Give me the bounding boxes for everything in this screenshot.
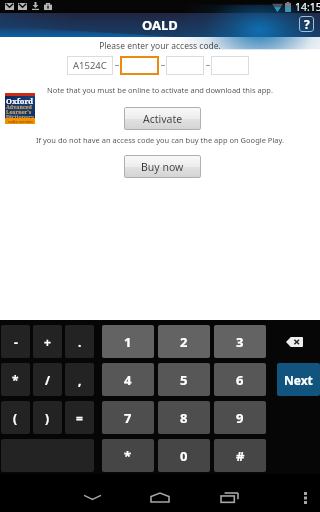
staticText: 6 <box>236 371 244 389</box>
staticText: Note that you must be online to activate… <box>0 85 320 95</box>
staticText: Oxford <box>6 96 34 106</box>
staticText: 8 <box>180 409 188 427</box>
staticText: ( <box>13 410 18 426</box>
button[interactable]: More options <box>295 483 315 512</box>
staticText: , <box>78 372 82 388</box>
button[interactable]: Activate <box>124 107 201 130</box>
button[interactable]: - <box>1 325 30 358</box>
button[interactable] <box>120 56 159 75</box>
button[interactable] <box>211 56 249 75</box>
button[interactable]: * <box>1 363 30 396</box>
staticText: radio version <box>8 119 33 124</box>
staticText: / <box>45 372 50 388</box>
staticText: Please enter your access code. <box>0 40 320 52</box>
staticText: 0 <box>180 447 188 465</box>
button[interactable]: Recent apps <box>209 483 249 512</box>
button[interactable]: * <box>102 439 154 472</box>
staticText: 3 <box>236 333 244 351</box>
button[interactable]: , <box>65 363 94 396</box>
button[interactable]: 5 <box>158 363 210 396</box>
button[interactable]: 8 <box>158 401 210 434</box>
staticText: 7 <box>124 409 132 427</box>
staticText: 5 <box>180 371 188 389</box>
staticText: ) <box>45 410 50 426</box>
staticText: Learner's <box>6 108 32 115</box>
button[interactable] <box>166 56 204 75</box>
button[interactable]: Backspace <box>268 325 320 358</box>
staticText: A1524C <box>73 59 107 72</box>
button[interactable]: A1524C <box>67 56 113 75</box>
button[interactable]: = <box>65 401 94 434</box>
button[interactable]: 4 <box>102 363 154 396</box>
button[interactable]: 1 <box>102 325 154 358</box>
staticText: 14:15 <box>295 0 320 13</box>
button[interactable]: 6 <box>214 363 266 396</box>
button[interactable]: 7 <box>102 401 154 434</box>
staticText: # <box>236 447 245 465</box>
staticText: Activate <box>143 112 183 126</box>
button[interactable]: ( <box>1 401 30 434</box>
staticText: Buy now <box>141 160 184 174</box>
staticText: Advanced <box>6 103 32 110</box>
button[interactable]: + <box>33 325 62 358</box>
staticText: 2 <box>180 333 188 351</box>
staticText: If you do not have an access code you ca… <box>0 135 320 145</box>
staticText: 4 <box>124 371 132 389</box>
staticText: . <box>78 334 82 350</box>
staticText: * <box>12 372 19 388</box>
staticText: + <box>44 334 51 350</box>
button[interactable]: 9 <box>214 401 266 434</box>
button[interactable]: Help <box>299 16 314 32</box>
button[interactable]: 0 <box>158 439 210 472</box>
staticText: OALD <box>142 16 178 34</box>
button[interactable]: 3 <box>214 325 266 358</box>
staticText: ? <box>304 16 310 32</box>
button[interactable]: / <box>33 363 62 396</box>
staticText: = <box>76 410 83 426</box>
button[interactable]: ) <box>33 401 62 434</box>
button[interactable]: 2 <box>158 325 210 358</box>
button[interactable]: . <box>65 325 94 358</box>
button[interactable]: Buy now <box>124 155 201 178</box>
staticText: * <box>124 447 132 465</box>
button[interactable]: Hide keyboard <box>72 483 112 512</box>
button[interactable]: Home <box>140 483 180 512</box>
button[interactable]: Next <box>277 363 320 396</box>
staticText: 1 <box>124 333 132 351</box>
staticText: 9 <box>236 409 244 427</box>
staticText: - <box>14 334 18 350</box>
staticText: Dictionary <box>6 113 34 120</box>
staticText: Next <box>284 372 313 388</box>
button[interactable]: # <box>214 439 266 472</box>
